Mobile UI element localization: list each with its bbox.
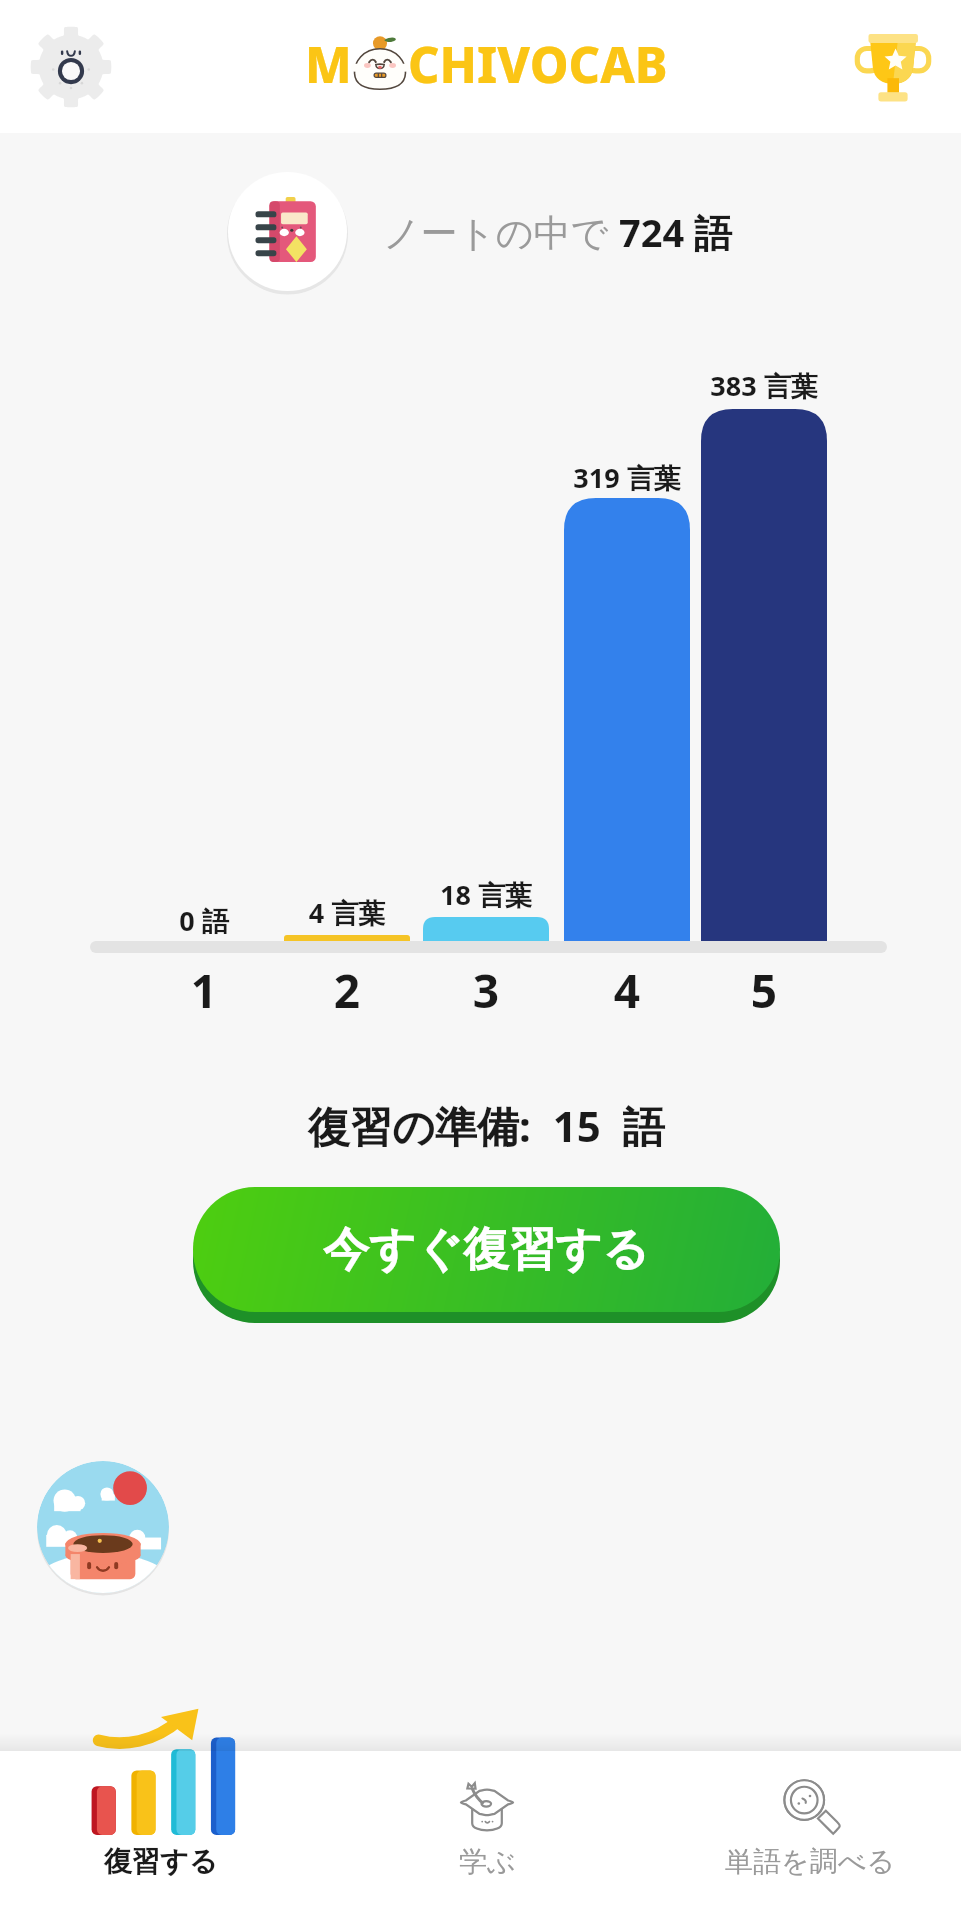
staticText: 724 語 (619, 206, 733, 258)
staticText: 383 言葉 (654, 367, 874, 404)
staticText: 5 (704, 959, 824, 1022)
staticText: CHIVOCAB (408, 31, 668, 98)
staticText: ノートの中で (383, 206, 619, 257)
button[interactable]: Profile (37, 1461, 169, 1593)
staticText: 復習する (104, 1844, 218, 1879)
button[interactable]: ノートの中で (227, 171, 733, 292)
button[interactable]: 復習する (11, 1751, 311, 1920)
staticText: 319 言葉 (517, 459, 737, 496)
button[interactable]: 学ぶ (337, 1751, 637, 1920)
staticText: 学ぶ (459, 1844, 516, 1879)
button[interactable]: Settings (29, 25, 113, 109)
staticText: 3 (426, 959, 546, 1022)
staticText: 2 (287, 959, 407, 1022)
staticText: 18 言葉 (376, 876, 596, 913)
staticText: 4 (567, 959, 687, 1022)
staticText: 4 言葉 (237, 894, 457, 931)
button[interactable]: Achievements (850, 24, 936, 110)
staticText: 1 (144, 959, 264, 1022)
staticText: 0 語 (94, 902, 314, 939)
staticText: 単語を調べる (725, 1844, 895, 1879)
staticText: 復習の準備: 15 語 (308, 1097, 665, 1154)
button[interactable]: 単語を調べる (660, 1751, 960, 1920)
button[interactable]: 今すぐ復習する (193, 1187, 780, 1323)
staticText: M (305, 31, 352, 98)
staticText: 今すぐ復習する (323, 1221, 650, 1279)
